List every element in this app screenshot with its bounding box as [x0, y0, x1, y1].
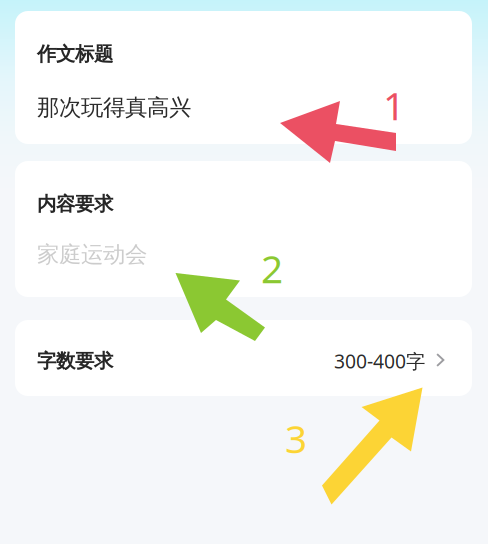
- staticText: 2: [261, 242, 283, 295]
- staticText: 家庭运动会: [37, 240, 147, 269]
- staticText: 内容要求: [37, 192, 113, 216]
- button[interactable]: 内容要求: [15, 161, 472, 297]
- button[interactable]: 作文标题: [15, 11, 472, 144]
- staticText: 1: [383, 79, 405, 132]
- staticText: 300-400字: [334, 348, 425, 374]
- button[interactable]: 字数要求: [15, 320, 472, 396]
- staticText: 那次玩得真高兴: [37, 93, 191, 122]
- staticText: 作文标题: [37, 42, 113, 66]
- staticText: 3: [285, 412, 307, 465]
- staticText: 字数要求: [37, 349, 113, 373]
